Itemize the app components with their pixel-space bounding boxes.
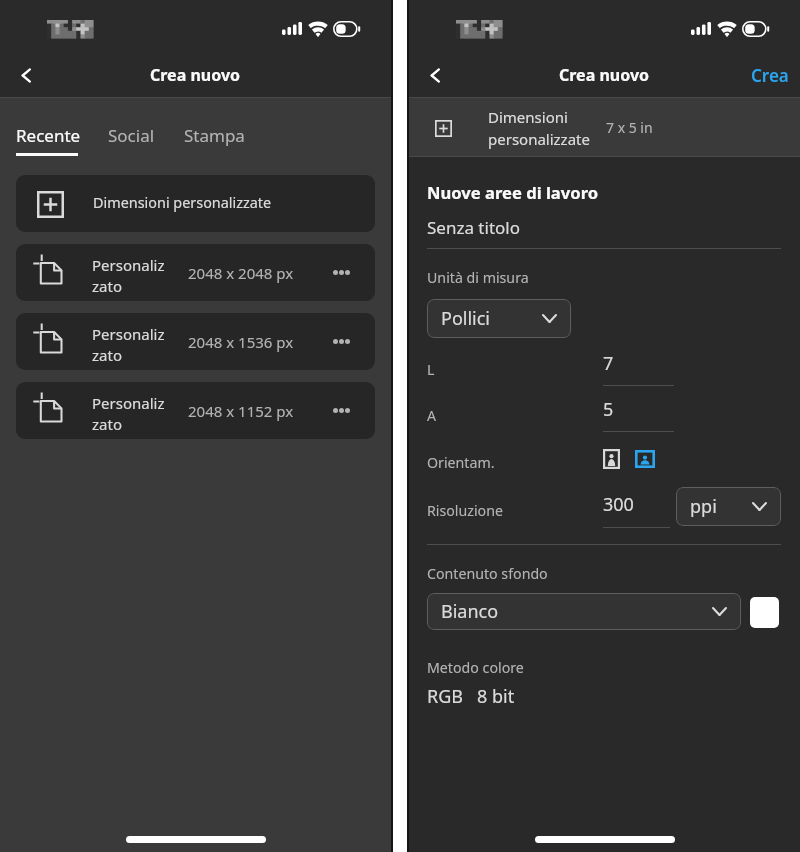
staticText: 7 (603, 351, 614, 376)
staticText: Personaliz (92, 324, 165, 344)
button[interactable]: Dimensioni personalizzate (16, 175, 375, 232)
staticText: Unità di misura (427, 268, 529, 287)
button[interactable]: More options (324, 393, 359, 428)
button[interactable]: Portrait orientation (603, 449, 620, 469)
button[interactable]: 300 (603, 494, 670, 528)
button[interactable]: More options (324, 324, 359, 359)
button[interactable]: Background colour (750, 597, 779, 628)
staticText: Dimensioni personalizzate (93, 193, 272, 213)
button[interactable]: 7 (603, 353, 674, 386)
button[interactable]: Back (5, 54, 47, 96)
button[interactable]: Personaliz (16, 313, 375, 370)
staticText: Bianco (441, 599, 499, 624)
staticText: zato (92, 345, 122, 365)
button[interactable]: Bianco (427, 593, 741, 630)
button[interactable]: Personaliz (16, 244, 375, 301)
staticText: 7 x 5 in (606, 118, 653, 137)
staticText: Dimensioni (488, 107, 568, 127)
staticText: Risoluzione (427, 501, 503, 520)
staticText: ppi (690, 494, 717, 519)
staticText: A (427, 406, 437, 425)
staticText: Crea nuovo (150, 64, 241, 86)
button[interactable]: Personaliz (16, 382, 375, 439)
button[interactable]: Pollici (427, 299, 571, 338)
button[interactable]: Landscape orientation (635, 450, 655, 468)
button[interactable]: Crea (747, 58, 793, 93)
staticText: personalizzate (488, 129, 590, 149)
button[interactable]: 5 (603, 399, 674, 432)
staticText: Crea (751, 64, 789, 87)
button[interactable]: More options (324, 255, 359, 290)
button[interactable]: Social (98, 110, 163, 162)
button[interactable]: Recente (6, 110, 88, 162)
staticText: Personaliz (92, 393, 165, 413)
staticText: 2048 x 2048 px (188, 263, 294, 283)
button[interactable]: Dimensioni (409, 98, 800, 157)
staticText: Personaliz (92, 255, 165, 275)
staticText: Contenuto sfondo (427, 564, 548, 583)
staticText: Nuove aree di lavoro (427, 181, 599, 204)
button[interactable]: Back (414, 54, 456, 96)
staticText: L (427, 360, 435, 379)
staticText: Recente (16, 124, 81, 147)
staticText: 2048 x 1152 px (188, 401, 294, 421)
staticText: 5 (603, 397, 614, 422)
staticText: Senza titolo (427, 216, 520, 239)
staticText: Social (108, 124, 155, 147)
staticText: zato (92, 414, 122, 434)
staticText: 2048 x 1536 px (188, 332, 294, 352)
staticText: Metodo colore (427, 658, 524, 677)
staticText: Orientam. (427, 453, 495, 472)
staticText: 300 (603, 492, 634, 517)
staticText: Crea nuovo (559, 64, 650, 86)
staticText: Stampa (184, 124, 245, 147)
staticText: RGB 8 bit (427, 684, 515, 709)
staticText: zato (92, 276, 122, 296)
staticText: Pollici (441, 306, 490, 331)
button[interactable]: Stampa (174, 110, 251, 162)
button[interactable]: ppi (676, 487, 781, 526)
